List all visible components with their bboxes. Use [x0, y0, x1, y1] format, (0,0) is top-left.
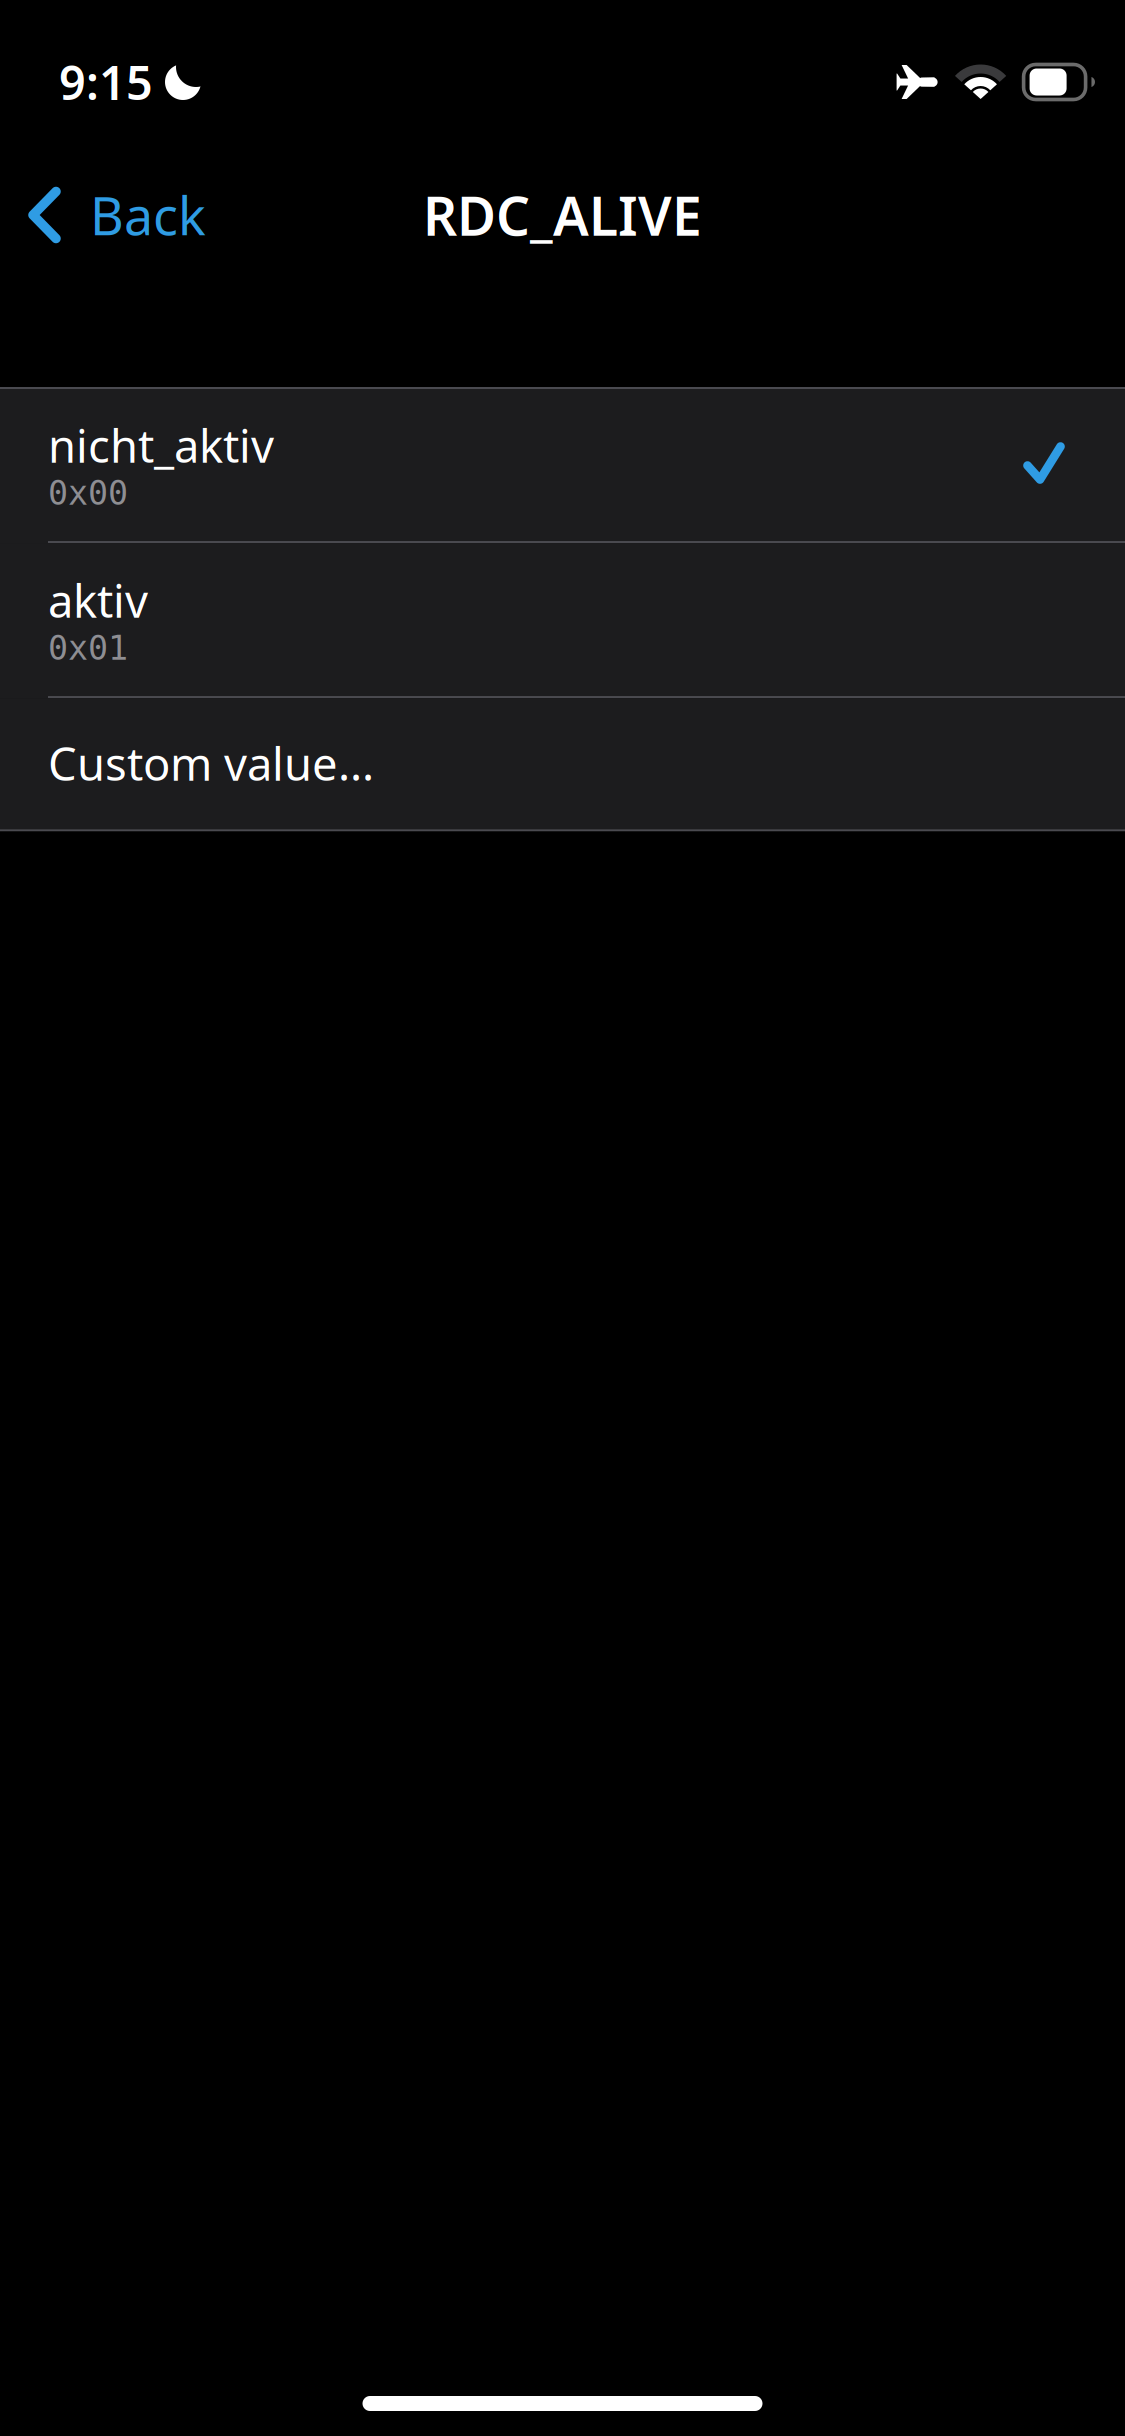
button[interactable]: Custom value...	[0, 698, 1125, 829]
staticText: 0x01	[48, 629, 128, 667]
staticText: nicht_aktiv	[48, 415, 274, 475]
staticText: aktiv	[48, 570, 148, 630]
staticText: 9:15	[59, 51, 153, 113]
staticText: 0x00	[48, 474, 128, 512]
staticText: Custom value...	[48, 733, 374, 793]
button[interactable]: nicht_aktiv	[0, 389, 1125, 539]
button[interactable]: Back	[0, 142, 230, 288]
button[interactable]: aktiv	[0, 543, 1125, 694]
staticText: Back	[90, 180, 206, 250]
staticText: RDC_ALIVE	[423, 180, 702, 250]
